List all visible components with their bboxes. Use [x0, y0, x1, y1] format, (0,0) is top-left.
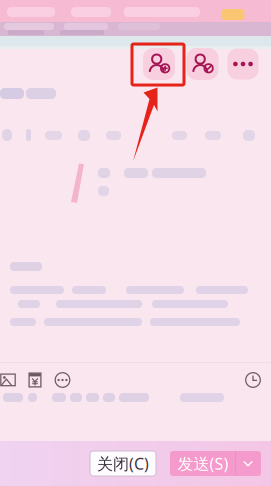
- staticText: 发送(S): [177, 453, 228, 474]
- button[interactable]: Insert image: [0, 369, 19, 391]
- button[interactable]: Send red packet: [24, 369, 46, 391]
- button[interactable]: More: [51, 369, 73, 391]
- staticText: 关闭(C): [97, 453, 149, 474]
- button[interactable]: Remove member: [186, 48, 218, 80]
- button[interactable]: Schedule send: [242, 369, 264, 391]
- button[interactable]: Add member: [143, 48, 175, 80]
- button[interactable]: 关闭(C): [90, 451, 156, 476]
- button[interactable]: More options: [227, 48, 258, 79]
- button[interactable]: 发送(S): [170, 451, 261, 476]
